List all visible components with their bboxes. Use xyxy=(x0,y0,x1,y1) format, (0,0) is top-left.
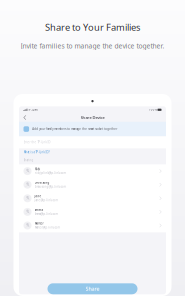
staticText: Enter the TP-Link ID xyxy=(23,140,50,144)
staticText: Add your family members to manage the sm… xyxy=(32,127,117,131)
button[interactable]: Back xyxy=(21,113,28,122)
staticText: Emma@tp-link.com xyxy=(34,212,57,216)
staticText: 100% xyxy=(149,108,157,111)
staticText: Drew Song xyxy=(34,181,49,184)
staticText: jane@tp-link.com xyxy=(34,198,57,202)
button[interactable]: Emma xyxy=(19,205,166,219)
staticText: What is a TP-Link ID? xyxy=(23,150,49,154)
staticText: Emma xyxy=(34,208,43,212)
button[interactable]: Walter xyxy=(19,219,166,232)
staticText: Sharing xyxy=(23,158,33,162)
button[interactable]: What is a TP-Link ID? xyxy=(23,150,49,154)
staticText: Share to Your Families xyxy=(45,21,140,33)
button[interactable]: Drew Song xyxy=(19,178,166,191)
button[interactable]: Nick xyxy=(19,164,166,178)
staticText: Nick xyxy=(34,167,40,171)
staticText: Walter@tp-link.com xyxy=(34,226,59,229)
staticText: Jane xyxy=(34,195,41,198)
staticText: TP-LINK xyxy=(27,108,38,111)
staticText: nick_tplink@tp-link.com xyxy=(34,171,65,175)
button[interactable]: Jane xyxy=(19,191,166,205)
staticText: Invite families to manage the device tog… xyxy=(20,41,164,50)
staticText: Share Device xyxy=(80,115,104,120)
staticText: Share xyxy=(85,285,99,292)
staticText: drew.song@tp-link.com xyxy=(34,185,65,188)
button[interactable]: Share xyxy=(47,283,137,294)
staticText: Walter xyxy=(34,222,43,225)
